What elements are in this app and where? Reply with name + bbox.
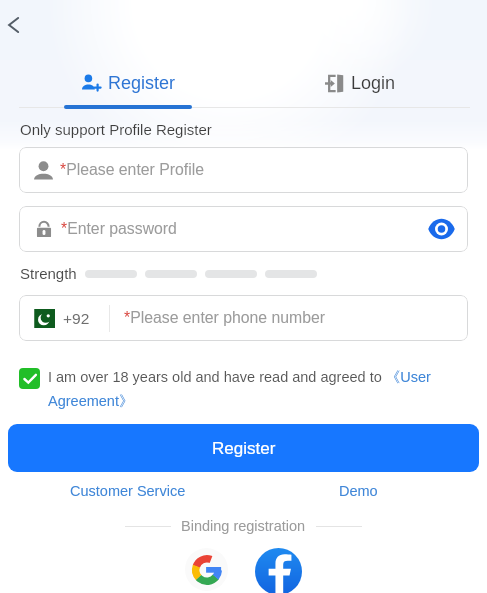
- button[interactable]: Demo: [339, 483, 378, 499]
- button[interactable]: +92: [19, 309, 109, 328]
- staticText: Strength: [20, 265, 77, 282]
- button[interactable]: *Please enter Profile: [19, 147, 468, 193]
- button[interactable]: Register: [0, 64, 243, 102]
- staticText: Binding registration: [181, 518, 306, 534]
- staticText: +92: [63, 310, 90, 327]
- staticText: *Please enter Profile: [60, 161, 205, 179]
- button[interactable]: Customer Service: [70, 483, 186, 499]
- button[interactable]: Login: [243, 64, 487, 102]
- button[interactable]: Back: [0, 7, 31, 43]
- button[interactable]: Agree to user agreement: [19, 368, 40, 389]
- staticText: Only support Profile Register: [20, 121, 212, 138]
- staticText: Customer Service: [70, 483, 186, 499]
- button[interactable]: *Enter password: [19, 206, 468, 252]
- staticText: Register: [212, 439, 276, 458]
- staticText: Demo: [339, 483, 378, 499]
- staticText: Register: [108, 73, 176, 93]
- staticText: Login: [351, 73, 396, 93]
- staticText: I am over 18 years old and have read and…: [48, 368, 467, 410]
- button[interactable]: Register: [8, 424, 479, 472]
- button[interactable]: Show password: [424, 212, 458, 246]
- staticText: *Enter password: [61, 220, 177, 238]
- button[interactable]: Sign in with Google: [185, 548, 228, 591]
- staticText: *Please enter phone number: [124, 309, 326, 327]
- button[interactable]: Sign in with Facebook: [255, 548, 302, 593]
